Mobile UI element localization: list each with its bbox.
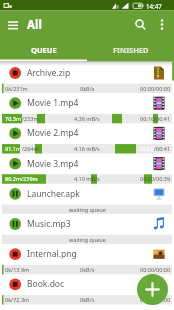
staticText: 0k/72.3m — [5, 296, 30, 303]
button[interactable] — [137, 274, 168, 305]
staticText: 00:00/00:00 — [140, 266, 171, 273]
button[interactable] — [153, 14, 171, 34]
staticText: Book.doc — [27, 278, 65, 290]
staticText: 4.10 mB/s — [74, 175, 100, 182]
button[interactable] — [0, 91, 174, 121]
staticText: 00:00/00:00 — [140, 296, 171, 303]
staticText: 0k/231m — [5, 85, 28, 92]
staticText: 4.38 mB/s — [74, 115, 100, 122]
button[interactable] — [0, 272, 174, 302]
staticText: All — [27, 17, 42, 33]
staticText: Movie 3.mp4 — [27, 158, 79, 170]
staticText: Movie 1.mp4 — [27, 97, 79, 109]
button[interactable] — [0, 61, 174, 91]
staticText: QUEUE — [31, 45, 57, 55]
staticText: 80.2m/239m — [5, 175, 38, 182]
staticText: /264m — [22, 145, 39, 152]
button[interactable] — [0, 121, 174, 151]
staticText: 0kB/s — [80, 85, 95, 92]
staticText: FINISHED — [113, 45, 149, 55]
staticText: Movie 2.mp4 — [27, 127, 79, 139]
button[interactable]: FINISHED — [87, 38, 174, 61]
staticText: 00:20/00:39 — [140, 175, 171, 182]
staticText: Launcher.apk — [27, 188, 80, 200]
staticText: waiting queue — [69, 236, 106, 243]
button[interactable] — [4, 14, 24, 34]
button[interactable] — [0, 212, 174, 242]
staticText: 00:00/00:00 — [140, 85, 171, 92]
staticText: /253m — [22, 115, 39, 122]
staticText: 91.1m — [5, 145, 22, 152]
staticText: 00:16/00:41 — [140, 115, 171, 122]
staticText: Music.mp3 — [27, 218, 71, 230]
button[interactable] — [0, 152, 174, 182]
button[interactable] — [0, 182, 174, 212]
staticText: 0kB/s — [80, 296, 95, 303]
staticText: Archive.zip — [27, 67, 71, 79]
staticText: Internal.png — [27, 248, 77, 260]
staticText: 0kB/s — [80, 266, 95, 273]
staticText: 4.16 mB/s — [74, 145, 100, 152]
button[interactable] — [130, 14, 150, 34]
staticText: 70.3m — [5, 115, 22, 122]
staticText: /00:41 — [154, 145, 171, 152]
staticText: 0k/13.9m — [5, 266, 30, 273]
staticText: 00:22 — [139, 145, 154, 152]
staticText: waiting queue — [69, 206, 106, 213]
staticText: 14:47 — [146, 2, 162, 10]
button[interactable] — [0, 242, 174, 272]
button[interactable]: QUEUE — [0, 38, 87, 61]
